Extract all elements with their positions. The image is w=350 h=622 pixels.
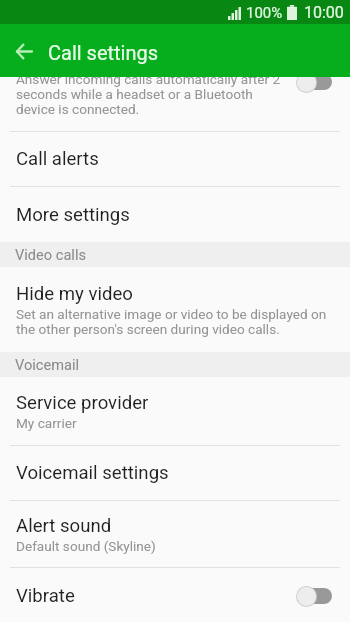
staticText: Auto answer <box>16 48 120 70</box>
staticText: Call alerts <box>16 148 99 170</box>
staticText: Voicemail settings <box>16 462 169 484</box>
button[interactable]: Alert sound <box>0 501 350 567</box>
staticText: 10:00 <box>304 3 344 22</box>
other: Vibrate <box>296 585 332 607</box>
button[interactable]: Hide my video <box>0 267 350 352</box>
button[interactable]: Call alerts <box>0 132 350 186</box>
staticText: Call settings <box>48 41 159 64</box>
staticText: Default sound (Skyline) <box>16 538 156 554</box>
staticText: Service provider <box>16 392 149 414</box>
staticText: Voicemail <box>15 356 80 373</box>
staticText: Set an alternative image or video to be … <box>16 306 332 337</box>
button[interactable]: More settings <box>0 187 350 242</box>
staticText: Vibrate <box>16 585 75 607</box>
staticText: Answer incoming calls automatically afte… <box>16 71 292 117</box>
staticText: More settings <box>16 204 130 226</box>
button[interactable]: Auto answer <box>0 33 350 131</box>
button[interactable]: Voicemail settings <box>0 446 350 500</box>
staticText: Alert sound <box>16 515 112 537</box>
button[interactable]: Navigate up <box>0 27 48 75</box>
button[interactable]: Service provider <box>0 377 350 445</box>
button[interactable]: Vibrate <box>0 568 350 622</box>
staticText: Video calls <box>15 246 86 263</box>
other: Auto answer <box>296 71 332 93</box>
staticText: 100% <box>246 4 283 22</box>
staticText: My carrier <box>16 415 77 431</box>
staticText: Hide my video <box>16 283 133 305</box>
